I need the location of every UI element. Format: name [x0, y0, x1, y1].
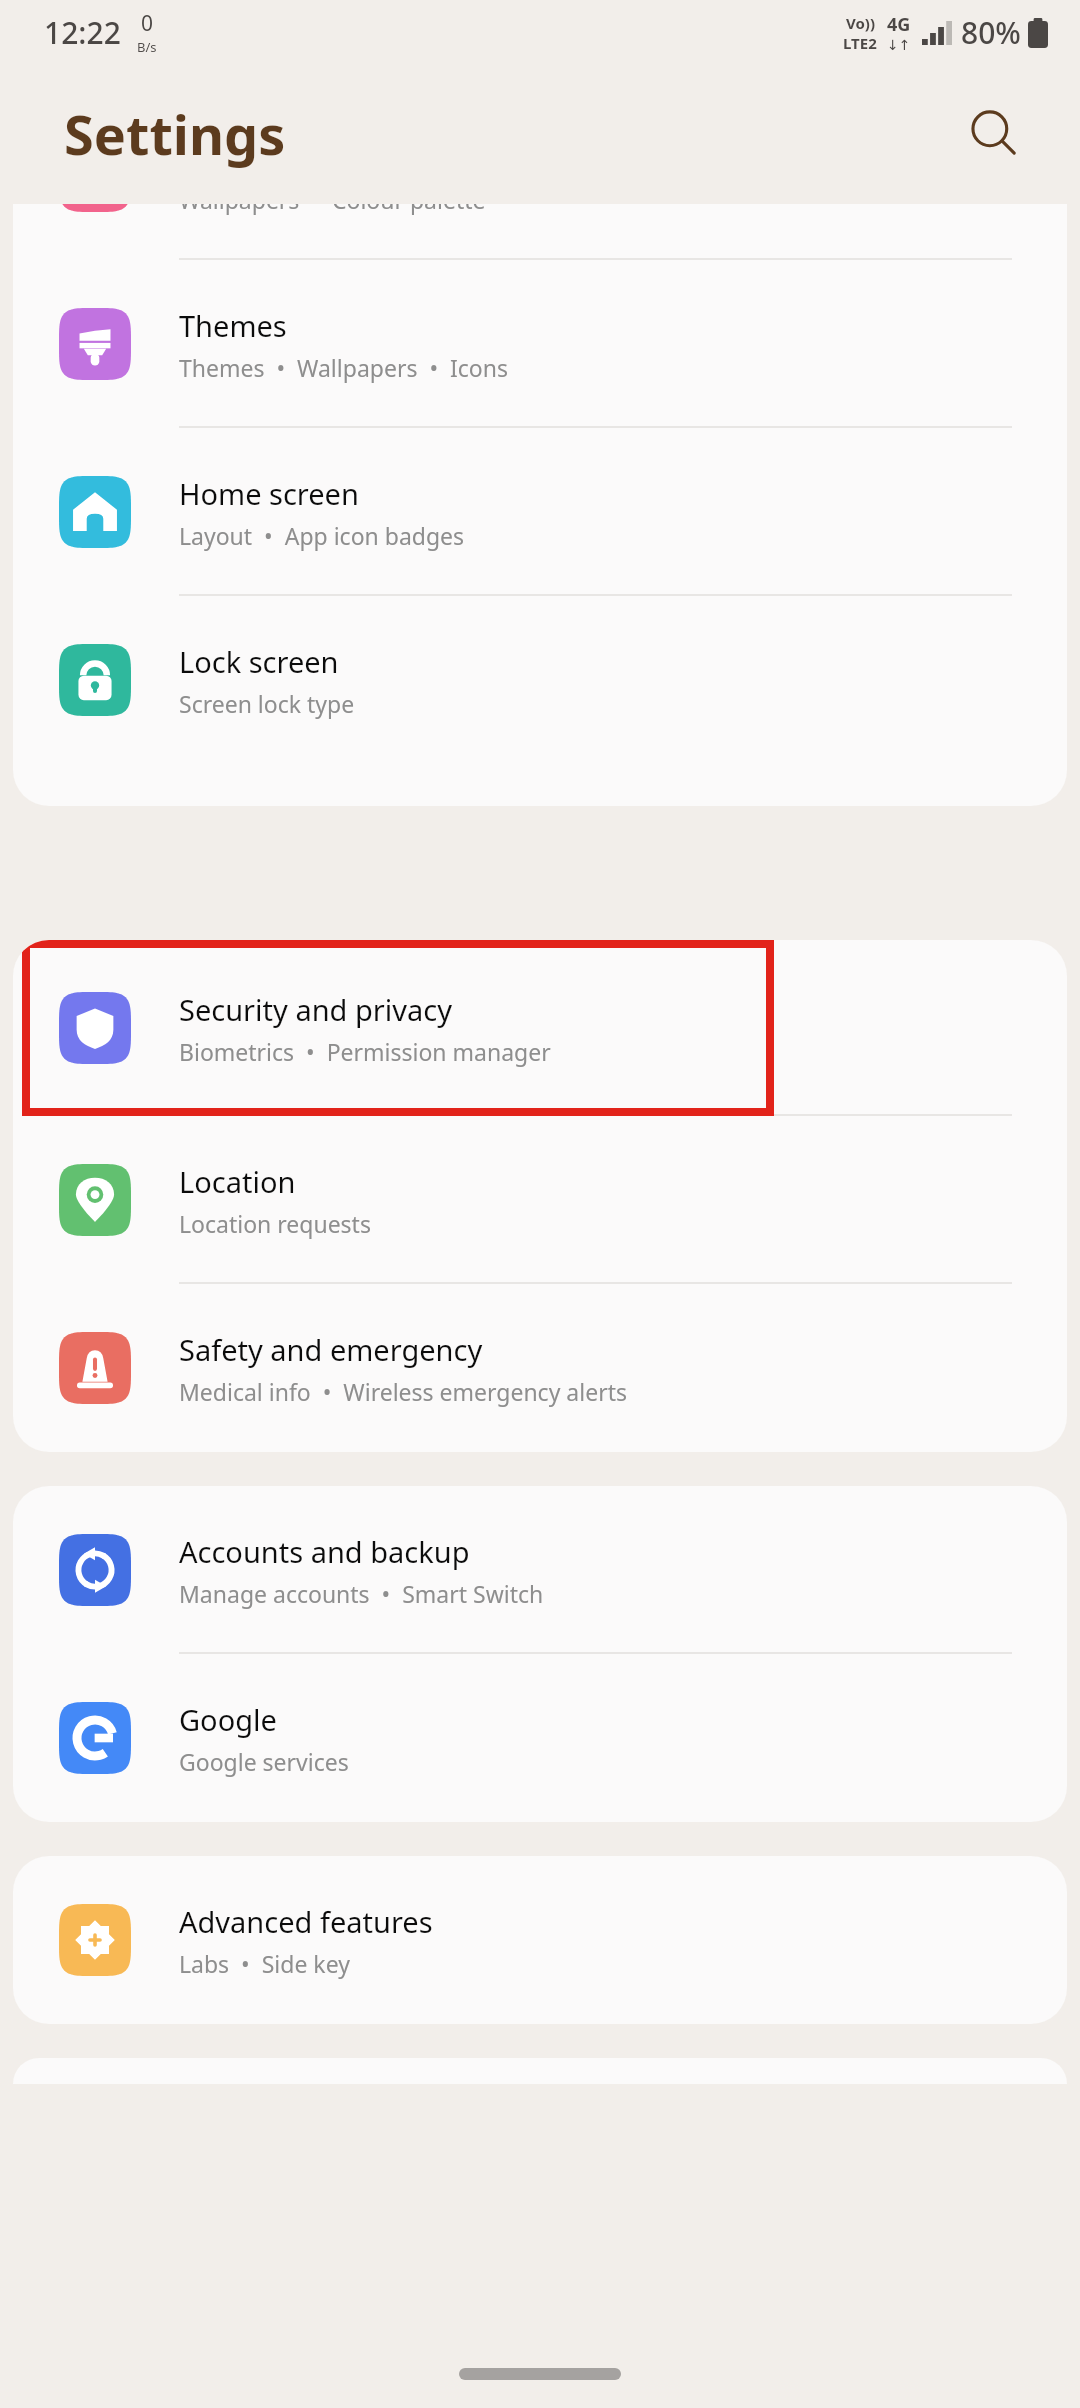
staticText: Lock screen: [179, 642, 339, 681]
staticText: Google: [179, 1700, 277, 1739]
staticText: Manage accounts • Smart Switch: [179, 1578, 544, 1609]
button[interactable]: Home screen: [13, 428, 1067, 596]
staticText: Security and privacy: [179, 990, 452, 1029]
staticText: LTE2: [843, 33, 877, 53]
staticText: Layout • App icon badges: [179, 520, 465, 551]
staticText: Location requests: [179, 1208, 371, 1239]
button[interactable]: Google: [13, 1654, 1067, 1822]
staticText: Wallpapers • Colour palette: [179, 204, 486, 215]
staticText: 80%: [961, 12, 1021, 53]
staticText: Advanced features: [179, 1902, 433, 1941]
button[interactable]: Security and privacy: [13, 940, 1067, 1116]
staticText: Medical info • Wireless emergency alerts: [179, 1376, 627, 1407]
staticText: ↓↑: [887, 37, 911, 53]
staticText: Home screen: [179, 474, 359, 513]
staticText: Safety and emergency: [179, 1330, 483, 1369]
staticText: Google services: [179, 1746, 349, 1777]
staticText: 4G: [887, 12, 911, 37]
staticText: Labs • Side key: [179, 1948, 350, 1979]
button[interactable]: Advanced features: [13, 1856, 1067, 2024]
staticText: Vo)): [846, 13, 875, 33]
staticText: 0: [141, 9, 154, 38]
button[interactable]: Location: [13, 1116, 1067, 1284]
staticText: Screen lock type: [179, 688, 355, 719]
staticText: Themes • Wallpapers • Icons: [179, 352, 508, 383]
staticText: B/s: [137, 38, 157, 56]
staticText: Settings: [64, 97, 286, 171]
button[interactable]: Lock screen: [13, 596, 1067, 764]
staticText: 12:22: [44, 12, 121, 53]
button[interactable]: Search: [954, 94, 1034, 174]
button[interactable]: Accounts and backup: [13, 1486, 1067, 1654]
staticText: Accounts and backup: [179, 1532, 470, 1571]
button[interactable]: Themes: [13, 260, 1067, 428]
staticText: Themes: [179, 306, 287, 345]
staticText: Location: [179, 1162, 296, 1201]
button[interactable]: Wallpaper: [13, 204, 1067, 260]
button[interactable]: Safety and emergency: [13, 1284, 1067, 1452]
staticText: Biometrics • Permission manager: [179, 1036, 551, 1067]
